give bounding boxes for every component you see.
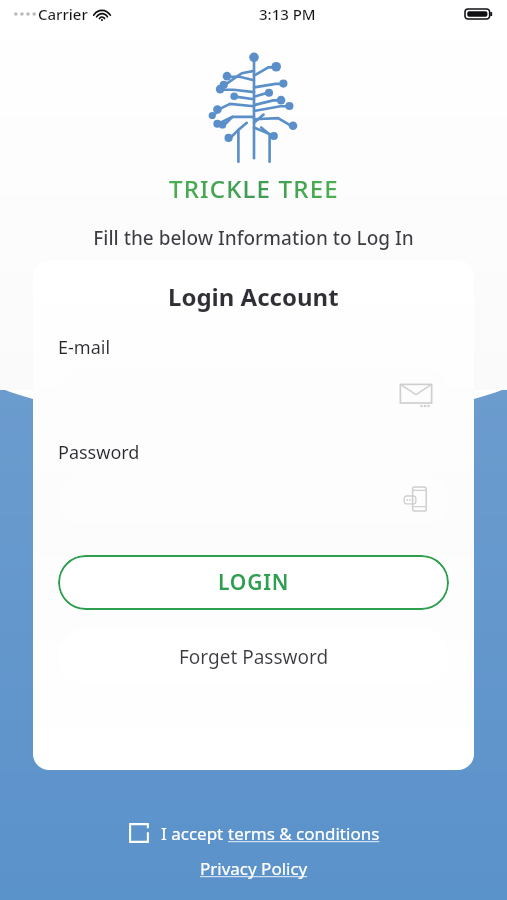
staticText: Carrier	[38, 4, 88, 24]
staticText: terms & conditions	[228, 822, 380, 845]
staticText: TRICKLE TREE	[169, 172, 339, 205]
button[interactable]: Accept terms checkbox	[121, 817, 386, 849]
button[interactable]	[58, 473, 449, 525]
button[interactable]: LOGIN	[58, 555, 449, 610]
staticText: LOGIN	[218, 568, 290, 597]
staticText: Privacy Policy	[200, 857, 308, 880]
other: Accept terms checkbox	[127, 821, 151, 845]
button[interactable]: Privacy Policy	[192, 855, 316, 882]
staticText: E-mail	[58, 335, 111, 360]
staticText: Password	[58, 440, 140, 465]
staticText: Login Account	[168, 280, 339, 313]
staticText: Forget Password	[179, 644, 329, 670]
staticText: I accept	[161, 822, 228, 845]
staticText: Fill the below Information to Log In	[93, 225, 414, 251]
button[interactable]: Forget Password	[58, 628, 449, 685]
button[interactable]	[58, 368, 449, 420]
staticText: 3:13 PM	[259, 4, 316, 24]
